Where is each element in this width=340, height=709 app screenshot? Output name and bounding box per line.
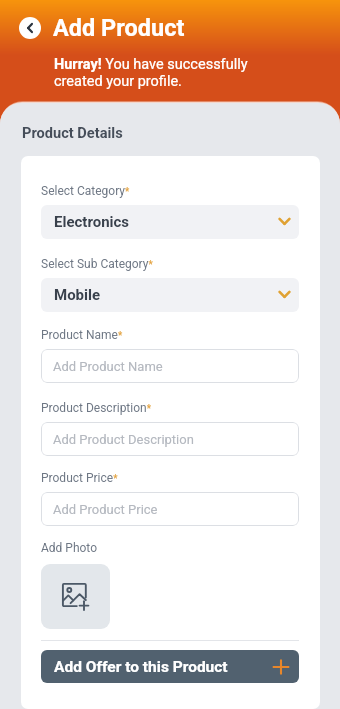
staticText: Mobile [54,286,101,304]
staticText: Add Offer to this Product [54,658,228,676]
staticText: Product Details [22,124,123,141]
staticText: Electronics [54,213,130,231]
staticText: Product Price* [41,471,118,485]
staticText: Select Sub Category* [41,257,153,271]
button[interactable]: Add Photo [41,564,110,629]
staticText: Add Product Name [53,359,163,374]
button[interactable]: Back [19,17,41,39]
button[interactable]: Electronics [41,205,299,239]
staticText: Add Photo [41,541,98,555]
button[interactable]: Add Product Description [41,422,299,456]
staticText: Add Product [53,14,185,42]
button[interactable]: Mobile [41,278,299,312]
staticText: Hurray! You have successfully [54,56,248,73]
button[interactable]: Add Product Price [41,492,299,526]
staticText: Product Name* [41,328,123,342]
staticText: Add Product Description [53,432,194,447]
button[interactable]: Add Product Name [41,349,299,383]
staticText: Select Category* [41,184,130,198]
staticText: Product Description* [41,401,151,415]
staticText: Add Product Price [53,502,158,517]
button[interactable]: Add Offer to this Product [41,650,299,683]
staticText: created your profile. [54,73,182,90]
